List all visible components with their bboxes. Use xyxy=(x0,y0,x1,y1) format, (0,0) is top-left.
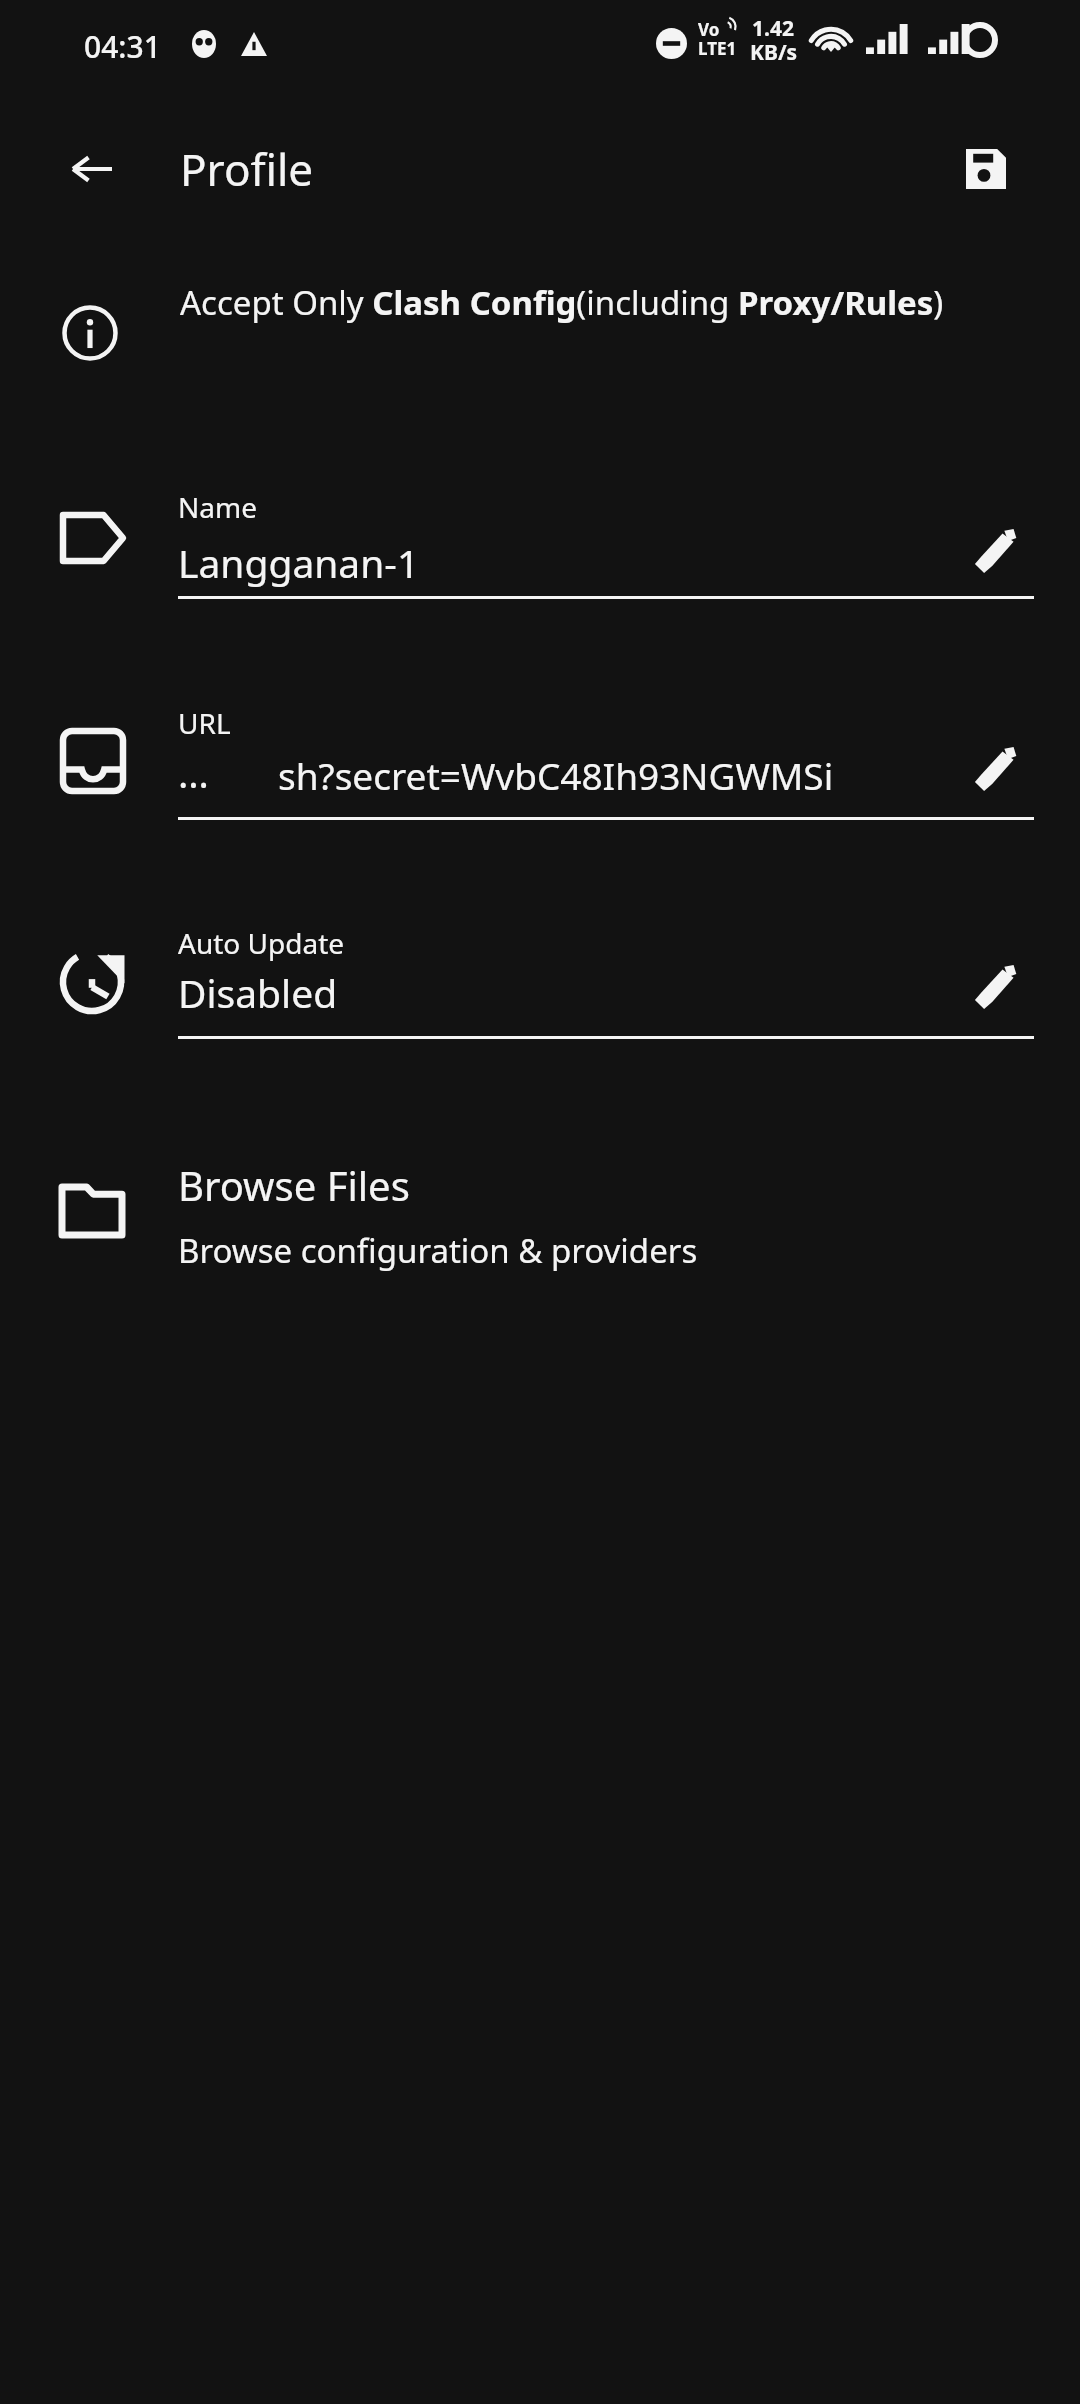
staticText: URL xyxy=(178,704,231,742)
staticText: Disabled xyxy=(178,966,338,1019)
button[interactable]: Back xyxy=(48,125,136,213)
staticText: 1.42 xyxy=(752,14,794,43)
staticText: 04:31 xyxy=(84,26,161,67)
staticText: Accept Only Clash Config(including Proxy… xyxy=(180,280,944,325)
staticText: Browse Files xyxy=(178,1158,410,1212)
staticText: … xyxy=(178,746,209,799)
staticText: Name xyxy=(178,488,257,526)
staticText: Browse configuration & providers xyxy=(178,1228,698,1273)
button[interactable]: Name xyxy=(178,470,1034,610)
staticText: Profile xyxy=(180,139,314,199)
button[interactable]: Save xyxy=(942,125,1030,213)
staticText: KB/s xyxy=(750,38,798,67)
staticText: Vo xyxy=(698,18,720,41)
button[interactable]: Browse Files xyxy=(178,1140,1034,1270)
button[interactable]: Auto Update xyxy=(178,908,1034,1050)
button[interactable]: URL xyxy=(178,688,1034,833)
staticText: Auto Update xyxy=(178,924,345,962)
staticText: LTE1 xyxy=(698,37,737,60)
staticText: sh?secret=WvbC48Ih93NGWMSi xyxy=(278,750,834,800)
staticText: Langganan-1 xyxy=(178,536,420,589)
